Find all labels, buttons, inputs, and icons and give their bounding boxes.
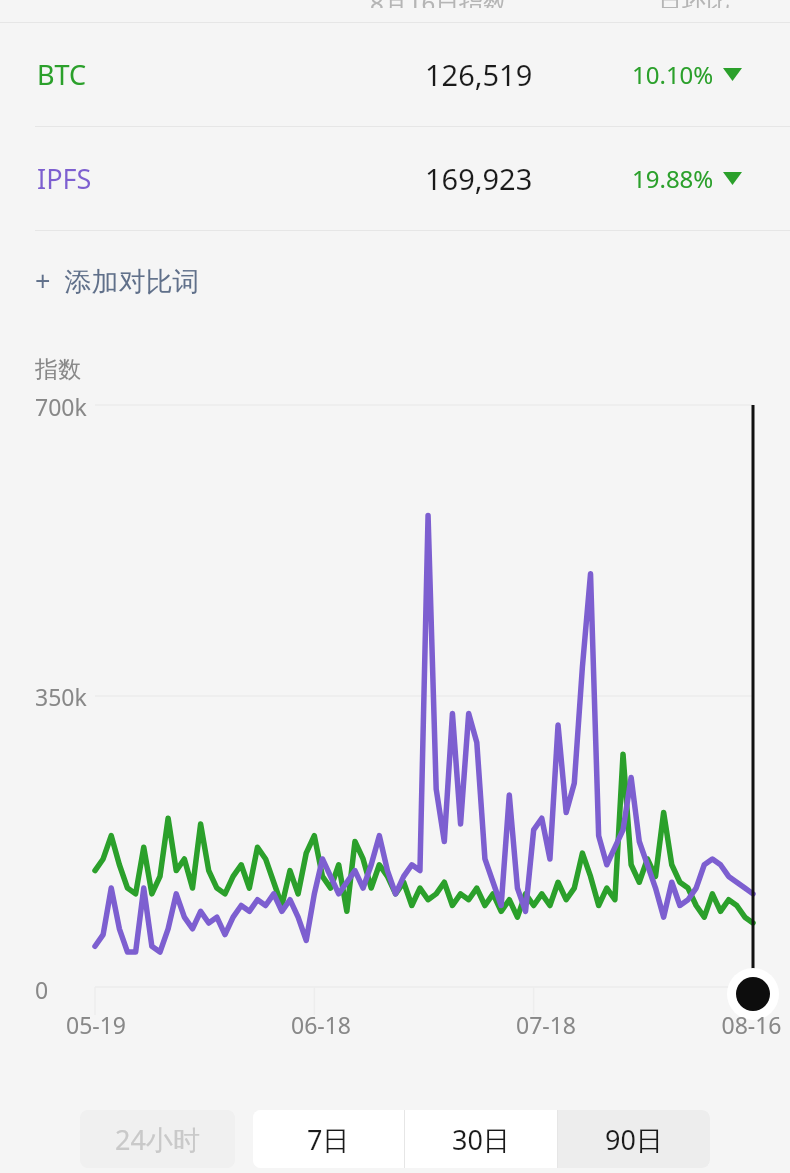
staticText: 126,519 [425, 55, 555, 94]
staticText: 700k [35, 391, 87, 422]
button[interactable]: 24小时 [80, 1110, 235, 1168]
staticText: IPFS [37, 160, 92, 197]
button[interactable]: 7日 [253, 1110, 404, 1168]
staticText: 24小时 [115, 1121, 200, 1158]
staticText: 08-16 [713, 1009, 790, 1040]
button[interactable]: 90日 [558, 1110, 710, 1168]
staticText: 指数 [35, 355, 81, 384]
staticText: 05-19 [55, 1009, 137, 1040]
staticText: BTC [37, 56, 87, 93]
staticText: + 添加对比词 [35, 262, 200, 299]
staticText: 7日 [307, 1121, 350, 1158]
staticText: 日环比 [658, 0, 730, 8]
staticText: 06-18 [280, 1009, 362, 1040]
staticText: 07-18 [505, 1009, 587, 1040]
staticText: 30日 [452, 1121, 510, 1158]
staticText: 8月16日指数 [370, 0, 508, 8]
staticText: 169,923 [425, 159, 555, 198]
staticText: 0 [35, 974, 49, 1005]
staticText: 10.10% [632, 58, 714, 91]
button[interactable]: + 添加对比词 [0, 231, 790, 329]
button[interactable]: 30日 [405, 1110, 557, 1168]
staticText: 350k [35, 681, 87, 712]
staticText: 19.88% [632, 162, 714, 195]
button[interactable]: BTC [0, 23, 790, 126]
button[interactable]: IPFS [0, 127, 790, 230]
staticText: 90日 [605, 1121, 663, 1158]
